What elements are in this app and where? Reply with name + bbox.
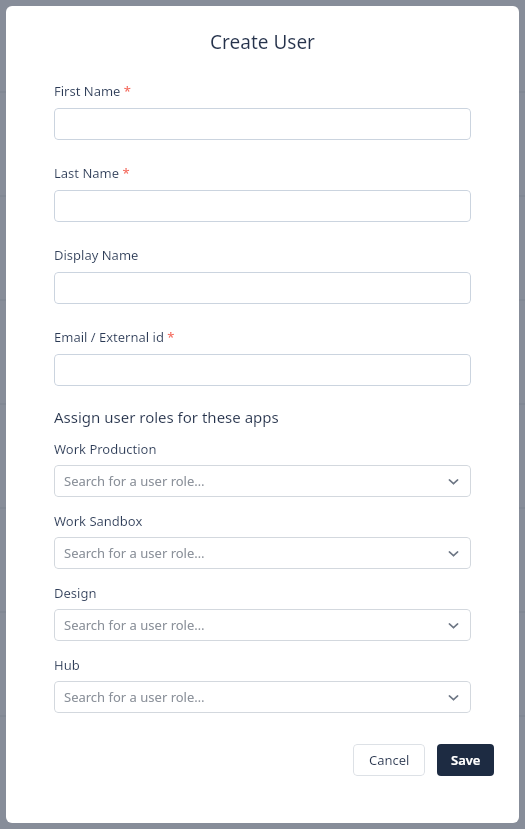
- staticText: Cancel: [369, 751, 410, 769]
- staticText: Design: [54, 584, 97, 602]
- button[interactable]: Work Sandbox user role selector: [54, 537, 471, 569]
- staticText: Hub: [54, 656, 80, 674]
- staticText: Work Sandbox: [54, 512, 143, 530]
- staticText: Search for a user role…: [64, 472, 447, 490]
- staticText: Email / External id *: [54, 328, 175, 346]
- button[interactable]: [54, 108, 471, 140]
- button[interactable]: [54, 190, 471, 222]
- staticText: Assign user roles for these apps: [54, 407, 279, 427]
- staticText: First Name *: [54, 82, 131, 100]
- button[interactable]: Save: [437, 744, 494, 776]
- staticText: Search for a user role…: [64, 544, 447, 562]
- button[interactable]: [54, 354, 471, 386]
- button[interactable]: Design user role selector: [54, 609, 471, 641]
- staticText: Create User: [6, 29, 519, 55]
- staticText: Search for a user role…: [64, 616, 447, 634]
- staticText: Search for a user role…: [64, 688, 447, 706]
- button[interactable]: Cancel: [353, 744, 425, 776]
- staticText: Save: [451, 751, 481, 769]
- button[interactable]: Work Production user role selector: [54, 465, 471, 497]
- button[interactable]: Hub user role selector: [54, 681, 471, 713]
- staticText: Work Production: [54, 440, 157, 458]
- staticText: Display Name: [54, 246, 139, 264]
- staticText: Last Name *: [54, 164, 130, 182]
- button[interactable]: [54, 272, 471, 304]
